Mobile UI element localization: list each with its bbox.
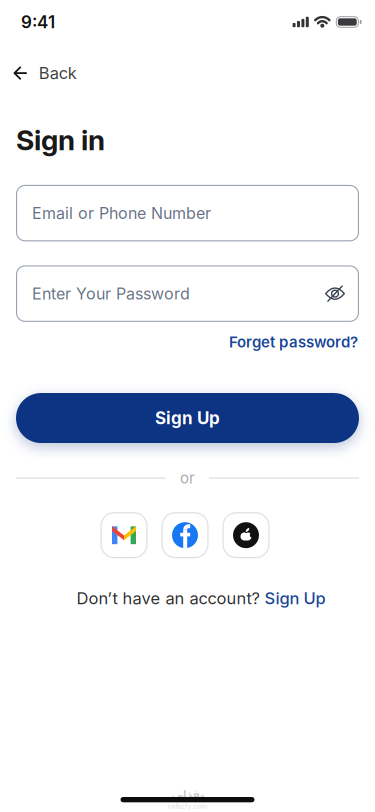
staticText: Enter Your Password <box>32 284 190 303</box>
button[interactable]: Sign Up <box>264 588 325 608</box>
staticText: Email or Phone Number <box>32 203 211 223</box>
staticText: Don’t have an account? <box>76 588 259 608</box>
staticText: or <box>180 469 195 487</box>
button[interactable]: Forget password? <box>229 333 358 351</box>
staticText: Back <box>39 63 77 83</box>
button[interactable]: Sign Up <box>16 393 359 443</box>
button[interactable] <box>222 512 269 558</box>
button[interactable] <box>100 512 147 558</box>
button[interactable] <box>161 512 208 558</box>
staticText: 9:41 <box>21 12 55 32</box>
staticText: Sign Up <box>155 408 220 428</box>
staticText: نفذلي <box>171 788 204 800</box>
staticText: Forget password? <box>229 333 358 351</box>
button[interactable]: Back <box>0 59 375 87</box>
staticText: Sign Up <box>264 588 325 608</box>
staticText: nafezly.com <box>167 802 207 810</box>
staticText: Sign in <box>16 123 105 157</box>
button[interactable] <box>324 284 345 303</box>
